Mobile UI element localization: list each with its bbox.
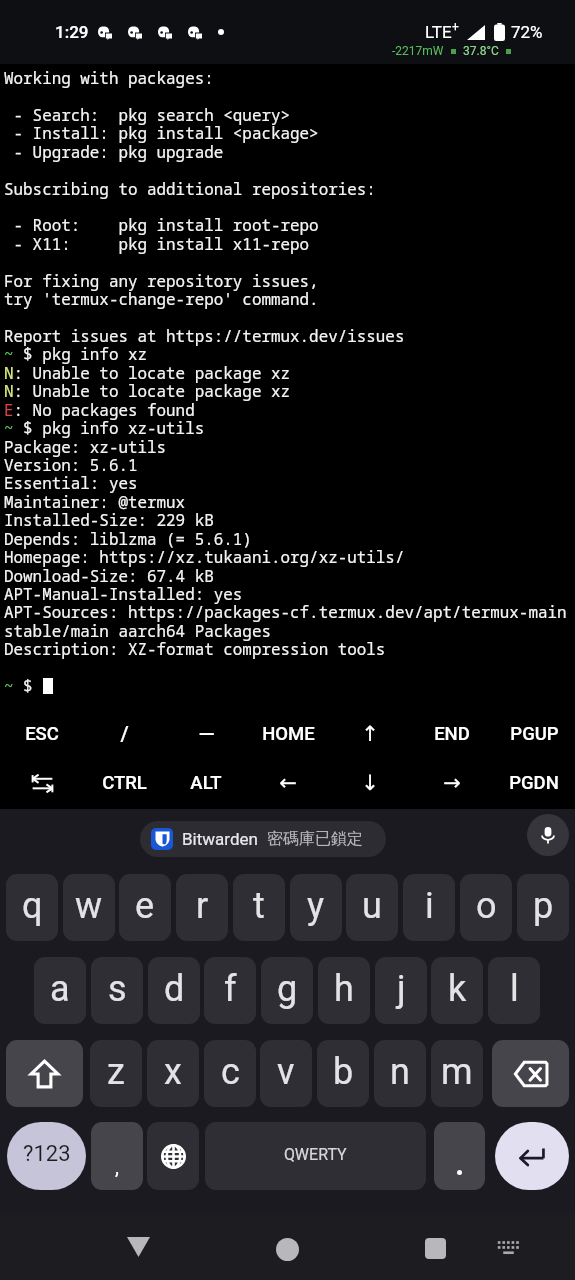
button[interactable]: END (411, 715, 493, 753)
button[interactable]: , (91, 1122, 143, 1190)
button[interactable]: g (261, 957, 313, 1024)
staticText: 37.8°C (463, 44, 499, 58)
staticText: c (221, 1051, 240, 1093)
button[interactable]: n (374, 1040, 426, 1107)
staticText: END (434, 723, 470, 745)
staticText: t (253, 885, 265, 927)
staticText: m (441, 1051, 473, 1093)
staticText: q (22, 885, 43, 927)
button[interactable] (434, 1122, 485, 1190)
button[interactable]: r (176, 874, 228, 941)
staticText: HOME (262, 723, 315, 745)
button[interactable]: ?123 (7, 1122, 86, 1190)
button[interactable]: → (411, 764, 493, 802)
staticText: Homepage: https://xz.tukaani.org/xz-util… (4, 546, 405, 568)
button[interactable]: Voice input (527, 814, 569, 856)
staticText: o (476, 885, 497, 927)
button[interactable]: PGUP (493, 715, 575, 753)
staticText: - X11: pkg install x11-repo (4, 233, 310, 255)
staticText: h (334, 968, 354, 1010)
staticText: stable/main aarch64 Packages (4, 620, 271, 642)
button[interactable]: ↓ (329, 764, 411, 802)
staticText: y (307, 885, 325, 927)
staticText: ~ $ pkg info xz (4, 343, 148, 365)
button[interactable]: s (91, 957, 143, 1024)
staticText: -2217mW (392, 44, 444, 58)
staticText: v (277, 1051, 295, 1093)
button[interactable]: y (290, 874, 342, 941)
button[interactable]: Recents (413, 1226, 458, 1271)
staticText: - Search: pkg search <query> (4, 104, 291, 126)
staticText: x (164, 1051, 182, 1093)
staticText: e (135, 885, 155, 927)
staticText: ~ $ (4, 675, 43, 697)
button[interactable]: Home (265, 1227, 310, 1272)
button[interactable]: PGDN (493, 764, 575, 802)
staticText: a (50, 968, 70, 1010)
button[interactable]: h (318, 957, 370, 1024)
button[interactable]: Change language (147, 1122, 199, 1190)
staticText: u (362, 885, 382, 927)
button[interactable]: CTRL (83, 764, 165, 802)
button[interactable]: Switch keyboard (486, 1225, 531, 1270)
staticText: s (108, 968, 127, 1010)
button[interactable]: o (460, 874, 512, 941)
button[interactable]: a (34, 957, 86, 1024)
button[interactable]: Back (116, 1224, 161, 1269)
button[interactable]: k (431, 957, 483, 1024)
button[interactable]: ← (247, 764, 329, 802)
button[interactable]: QWERTY (205, 1122, 426, 1190)
button[interactable]: v (260, 1040, 312, 1107)
button[interactable]: t (233, 874, 285, 941)
button[interactable]: w (63, 874, 115, 941)
button[interactable] (0, 764, 83, 802)
staticText: ALT (190, 772, 222, 794)
button[interactable]: Shift (6, 1040, 83, 1107)
staticText: 1:29 (55, 22, 89, 42)
button[interactable]: Tab (26, 767, 59, 800)
staticText: PGDN (509, 772, 559, 794)
staticText: — (198, 722, 215, 747)
button[interactable]: m (431, 1040, 483, 1107)
staticText: Working with packages: (4, 67, 214, 89)
button[interactable]: HOME (247, 715, 329, 753)
button[interactable]: d (148, 957, 200, 1024)
button[interactable]: Backspace (492, 1040, 569, 1107)
staticText: N: Unable to locate package xz (4, 380, 291, 402)
button[interactable]: ALT (165, 764, 247, 802)
staticText: p (533, 885, 554, 927)
button[interactable]: Enter (495, 1122, 569, 1190)
button[interactable]: Bitwarden (140, 821, 386, 857)
button[interactable]: c (204, 1040, 256, 1107)
button[interactable]: ↑ (329, 715, 411, 753)
staticText: N: Unable to locate package xz (4, 362, 291, 384)
staticText: n (390, 1051, 410, 1093)
button[interactable]: u (346, 874, 398, 941)
button[interactable]: j (375, 957, 427, 1024)
button[interactable]: / (83, 715, 165, 753)
button[interactable]: q (6, 874, 58, 941)
button[interactable]: ESC (0, 715, 83, 753)
button[interactable]: z (90, 1040, 142, 1107)
staticText: 72% (511, 22, 543, 42)
staticText: f (224, 968, 237, 1010)
button[interactable]: x (147, 1040, 199, 1107)
staticText: k (448, 968, 467, 1010)
staticText: ← (279, 771, 297, 795)
button[interactable]: i (403, 874, 455, 941)
staticText: d (164, 968, 185, 1010)
staticText: try 'termux-change-repo' command. (4, 288, 319, 310)
button[interactable]: b (317, 1040, 369, 1107)
staticText: j (397, 968, 406, 1010)
staticText: - Install: pkg install <package> (4, 122, 319, 144)
staticText: APT-Manual-Installed: yes (4, 583, 243, 605)
button[interactable]: f (204, 957, 256, 1024)
staticText: QWERTY (284, 1145, 347, 1164)
button[interactable]: p (517, 874, 569, 941)
staticText: Report issues at https://termux.dev/issu… (4, 325, 405, 347)
staticText: - Root: pkg install root-repo (4, 214, 319, 236)
button[interactable]: — (165, 715, 247, 753)
button[interactable]: l (488, 957, 540, 1024)
staticText: Package: xz-utils (4, 436, 167, 458)
button[interactable]: e (119, 874, 171, 941)
